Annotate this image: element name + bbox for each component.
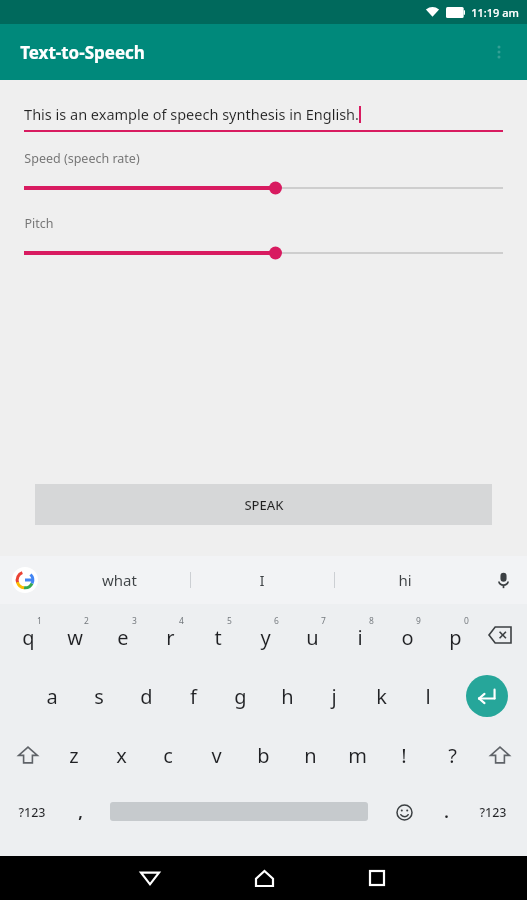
button[interactable]: SPEAK [35, 484, 492, 525]
staticText: 1 [37, 615, 42, 627]
button[interactable]: ! [381, 726, 427, 784]
staticText: n [304, 742, 317, 769]
button[interactable]: Back [128, 856, 172, 900]
button[interactable]: Enter [466, 675, 508, 717]
button[interactable]: Backspace [477, 604, 523, 666]
button[interactable]: 6 [242, 604, 288, 666]
button[interactable]: . [424, 784, 468, 840]
staticText: what [102, 570, 137, 590]
staticText: Text-to-Speech [20, 41, 145, 64]
staticText: 6 [274, 615, 279, 627]
button[interactable]: Emoji [382, 784, 426, 840]
staticText: SPEAK [244, 496, 284, 514]
staticText: u [306, 624, 319, 651]
button[interactable]: h [264, 666, 310, 726]
button[interactable]: v [193, 726, 239, 784]
staticText: f [190, 683, 197, 710]
button[interactable]: Shift [5, 726, 51, 784]
staticText: 8 [369, 615, 374, 627]
staticText: s [94, 683, 104, 710]
button[interactable]: I [210, 556, 314, 604]
staticText: 9 [416, 615, 421, 627]
staticText: e [117, 624, 129, 651]
button[interactable]: , [58, 784, 102, 840]
button[interactable]: b [240, 726, 286, 784]
button[interactable]: hi [353, 556, 457, 604]
button[interactable]: 1 [5, 604, 51, 666]
staticText: i [357, 624, 363, 651]
button[interactable]: Recent apps [355, 856, 399, 900]
staticText: 0 [464, 615, 469, 627]
staticText: 11:19 am [471, 5, 519, 20]
staticText: 3 [132, 615, 137, 627]
staticText: z [69, 742, 79, 769]
button[interactable]: ?123 [465, 784, 521, 840]
button[interactable]: f [170, 666, 216, 726]
button[interactable] [24, 244, 503, 262]
button[interactable]: 5 [195, 604, 241, 666]
staticText: c [163, 742, 173, 769]
staticText: r [166, 624, 175, 651]
button[interactable]: m [334, 726, 380, 784]
staticText: t [214, 624, 222, 651]
staticText: d [140, 683, 153, 710]
staticText: ?123 [479, 804, 507, 821]
staticText: ? [448, 742, 457, 769]
button[interactable]: a [29, 666, 75, 726]
button[interactable]: Shift [477, 726, 523, 784]
staticText: q [22, 624, 35, 651]
button[interactable]: ?123 [4, 784, 60, 840]
staticText: Pitch [24, 215, 54, 232]
staticText: w [67, 624, 83, 651]
staticText: o [401, 624, 414, 651]
staticText: j [331, 683, 337, 710]
button[interactable]: ? [429, 726, 475, 784]
staticText: 4 [179, 615, 184, 627]
staticText: b [257, 742, 270, 769]
staticText: , [78, 801, 83, 823]
staticText: Speed (speech rate) [24, 150, 140, 167]
staticText: v [211, 742, 222, 769]
button[interactable]: 8 [337, 604, 383, 666]
button[interactable]: l [405, 666, 451, 726]
button[interactable]: n [287, 726, 333, 784]
staticText: 5 [227, 615, 232, 627]
button[interactable]: g [217, 666, 263, 726]
staticText: 2 [84, 615, 89, 627]
staticText: ?123 [18, 804, 46, 821]
button[interactable]: 7 [289, 604, 335, 666]
button[interactable]: 9 [384, 604, 430, 666]
button[interactable]: More options [477, 30, 521, 74]
button[interactable]: 2 [52, 604, 98, 666]
button[interactable]: c [145, 726, 191, 784]
button[interactable]: x [98, 726, 144, 784]
button[interactable]: s [76, 666, 122, 726]
staticText: l [425, 683, 431, 710]
button[interactable]: what [67, 556, 171, 604]
button[interactable]: 0 [432, 604, 478, 666]
button[interactable]: Home [242, 856, 286, 900]
staticText: This is an example of speech synthesis i… [24, 104, 359, 124]
button[interactable]: 3 [100, 604, 146, 666]
button[interactable]: k [358, 666, 404, 726]
button[interactable]: j [311, 666, 357, 726]
button[interactable]: Google [10, 565, 40, 595]
staticText: a [46, 683, 58, 710]
staticText: . [444, 801, 449, 823]
staticText: ! [401, 742, 407, 769]
staticText: 7 [321, 615, 326, 627]
button[interactable]: z [51, 726, 97, 784]
staticText: g [234, 683, 247, 710]
staticText: k [376, 683, 387, 710]
button[interactable]: Voice input [483, 560, 523, 600]
staticText: p [449, 624, 462, 651]
button[interactable] [24, 179, 503, 197]
staticText: m [348, 742, 367, 769]
staticText: h [281, 683, 294, 710]
staticText: hi [398, 570, 412, 590]
button[interactable]: 4 [147, 604, 193, 666]
staticText: y [260, 624, 271, 651]
button[interactable]: d [123, 666, 169, 726]
staticText: I [259, 570, 265, 590]
